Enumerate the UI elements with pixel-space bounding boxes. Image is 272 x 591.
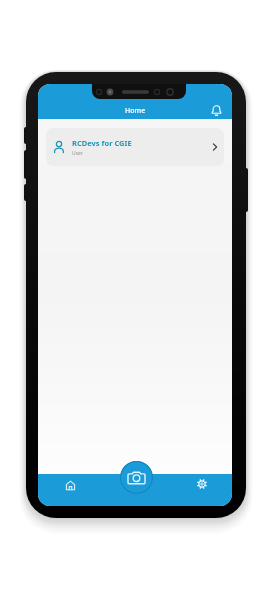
staticText: User [72, 150, 83, 157]
button[interactable] [120, 461, 153, 494]
button[interactable] [210, 104, 223, 117]
staticText: Home [125, 106, 146, 116]
button[interactable] [197, 479, 207, 489]
button[interactable]: RCDevs for CGIE [46, 128, 224, 166]
button[interactable] [65, 480, 75, 490]
staticText: RCDevs for CGIE [72, 138, 132, 148]
